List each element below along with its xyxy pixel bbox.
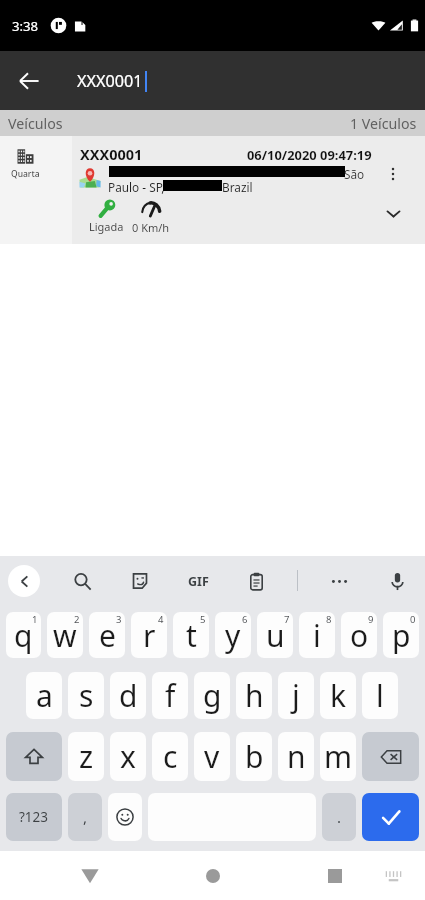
staticText: c [163, 736, 178, 777]
button[interactable]: Home [189, 856, 237, 896]
button[interactable]: b [236, 732, 272, 781]
button[interactable]: Shift [6, 732, 62, 781]
staticText: r [143, 615, 156, 656]
button[interactable]: f [152, 672, 188, 719]
button[interactable]: a [26, 672, 62, 719]
button[interactable]: Recents [311, 856, 359, 896]
staticText: u [266, 615, 285, 656]
staticText: São [344, 166, 365, 182]
button[interactable]: Period [322, 793, 356, 841]
staticText: GIF [188, 573, 209, 590]
staticText: w [53, 615, 77, 656]
staticText: m [324, 736, 353, 777]
button[interactable]: Backspace [362, 732, 419, 781]
button[interactable]: r [131, 612, 167, 658]
button[interactable]: v [194, 732, 230, 781]
button[interactable]: j [278, 672, 314, 719]
staticText: 2 [74, 613, 80, 626]
button[interactable]: Back [3, 55, 55, 107]
button[interactable]: c [152, 732, 188, 781]
staticText: 9 [368, 613, 374, 626]
staticText: f [165, 675, 176, 716]
button[interactable]: m [320, 732, 356, 781]
staticText: 0 [410, 613, 416, 626]
button[interactable]: Switch keyboard [373, 856, 413, 896]
staticText: v [204, 736, 220, 777]
button[interactable]: Quarta [0, 136, 425, 244]
button[interactable]: Expand [378, 198, 408, 228]
staticText: . [337, 807, 342, 827]
staticText: s [79, 675, 94, 716]
staticText: l [376, 675, 384, 716]
staticText: 3 [116, 613, 122, 626]
staticText: 1 [32, 613, 38, 626]
staticText: b [245, 736, 264, 777]
button[interactable]: x [110, 732, 146, 781]
staticText: k [330, 675, 347, 716]
staticText: 8 [326, 613, 332, 626]
button[interactable]: n [278, 732, 314, 781]
button[interactable]: Back [66, 856, 114, 896]
staticText: x [120, 736, 136, 777]
button[interactable]: Close toolbar [8, 565, 40, 597]
staticText: , [83, 807, 88, 827]
staticText: y [225, 615, 241, 656]
button[interactable]: w [47, 612, 83, 658]
button[interactable]: q [6, 612, 41, 658]
staticText: Ligada [89, 219, 124, 234]
button[interactable]: o [341, 612, 377, 658]
staticText: 3:38 [12, 17, 39, 35]
staticText: Brazil [222, 179, 253, 195]
staticText: n [287, 736, 306, 777]
staticText: 5 [200, 613, 206, 626]
staticText: Paulo - SP, [108, 179, 165, 195]
button[interactable]: Enter [362, 793, 419, 841]
staticText: i [313, 615, 321, 656]
button[interactable]: Clipboard [239, 564, 273, 598]
button[interactable]: More [322, 564, 356, 598]
button[interactable]: h [236, 672, 272, 719]
button[interactable]: Comma [68, 793, 102, 841]
staticText: Veículos [8, 114, 63, 133]
button[interactable]: y [215, 612, 251, 658]
staticText: 0 Km/h [132, 220, 170, 235]
button[interactable]: d [110, 672, 146, 719]
staticText: h [245, 675, 264, 716]
staticText: q [14, 615, 33, 656]
staticText: XXX0001 [77, 70, 143, 92]
button[interactable]: e [89, 612, 125, 658]
button[interactable]: GIF [181, 564, 215, 598]
staticText: g [203, 675, 222, 716]
staticText: 06/10/2020 09:47:19 [247, 146, 372, 164]
staticText: a [36, 675, 53, 716]
button[interactable]: k [320, 672, 356, 719]
button[interactable]: Search [65, 564, 99, 598]
staticText: 4 [158, 613, 164, 626]
button[interactable]: More options [378, 159, 408, 189]
staticText: e [99, 615, 116, 656]
staticText: o [350, 615, 369, 656]
button[interactable]: s [68, 672, 104, 719]
button[interactable]: i [299, 612, 335, 658]
button[interactable]: Numbers [6, 793, 62, 841]
staticText: XXX0001 [80, 144, 143, 164]
button[interactable]: z [68, 732, 104, 781]
staticText: 7 [284, 613, 290, 626]
staticText: d [119, 675, 138, 716]
staticText: Quarta [11, 168, 40, 180]
button[interactable]: Voice input [380, 564, 414, 598]
staticText: t [186, 615, 197, 656]
staticText: 1 Veículos [350, 114, 417, 133]
button[interactable]: Stickers [123, 564, 157, 598]
button[interactable]: g [194, 672, 230, 719]
button[interactable]: l [362, 672, 398, 719]
button[interactable]: u [257, 612, 293, 658]
button[interactable]: t [173, 612, 209, 658]
staticText: 6 [242, 613, 248, 626]
button[interactable]: p [383, 612, 419, 658]
staticText: ?123 [19, 808, 49, 826]
staticText: z [79, 736, 94, 777]
button[interactable]: Emoji [108, 793, 142, 841]
staticText: j [292, 675, 300, 716]
